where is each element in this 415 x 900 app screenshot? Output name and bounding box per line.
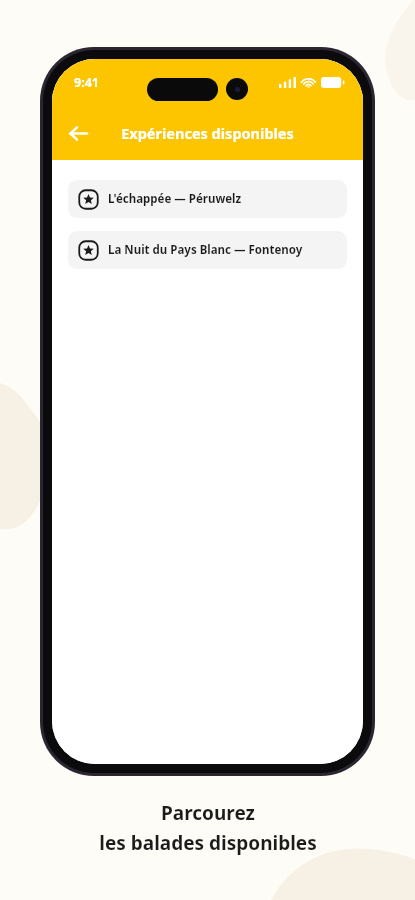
staticText: L'échappée — Péruwelz	[108, 191, 242, 207]
staticText: Parcourez	[161, 800, 255, 826]
button[interactable]: La Nuit du Pays Blanc — Fontenoy	[68, 231, 347, 269]
staticText: les balades disponibles	[99, 830, 317, 856]
staticText: 9:41	[74, 74, 99, 91]
staticText: La Nuit du Pays Blanc — Fontenoy	[108, 242, 303, 258]
staticText: Expériences disponibles	[121, 123, 294, 143]
button[interactable]: Back	[58, 113, 98, 153]
button[interactable]: L'échappée — Péruwelz	[68, 180, 347, 218]
